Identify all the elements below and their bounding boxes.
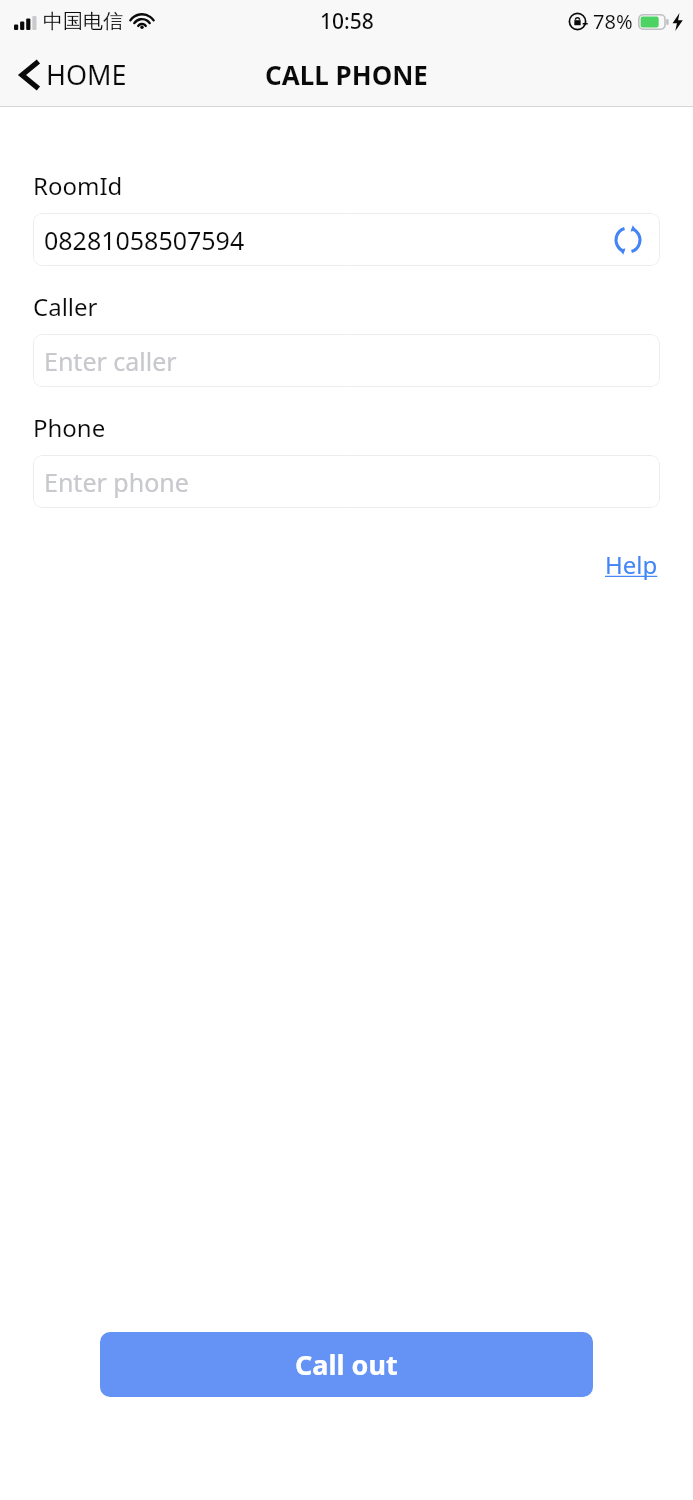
staticText: Caller bbox=[33, 290, 98, 323]
staticText: RoomId bbox=[33, 169, 123, 202]
staticText: 78% bbox=[593, 8, 633, 35]
button[interactable]: Refresh room id bbox=[610, 222, 646, 258]
staticText: HOME bbox=[46, 56, 127, 93]
staticText: 中国电信 bbox=[43, 9, 123, 34]
staticText: 08281058507594 bbox=[44, 223, 245, 257]
staticText: 10:58 bbox=[320, 7, 374, 36]
button[interactable]: Help bbox=[603, 546, 660, 583]
staticText: CALL PHONE bbox=[265, 57, 428, 92]
button[interactable]: Call out bbox=[100, 1332, 593, 1397]
button[interactable]: HOME bbox=[0, 42, 141, 107]
staticText: Phone bbox=[33, 411, 106, 444]
staticText: Enter phone bbox=[44, 465, 189, 499]
staticText: Help bbox=[605, 548, 658, 581]
staticText: Call out bbox=[295, 1346, 398, 1383]
staticText: Enter caller bbox=[44, 344, 177, 378]
button[interactable]: 08281058507594 bbox=[33, 213, 660, 266]
button[interactable]: Enter phone bbox=[33, 455, 660, 508]
button[interactable]: Enter caller bbox=[33, 334, 660, 387]
